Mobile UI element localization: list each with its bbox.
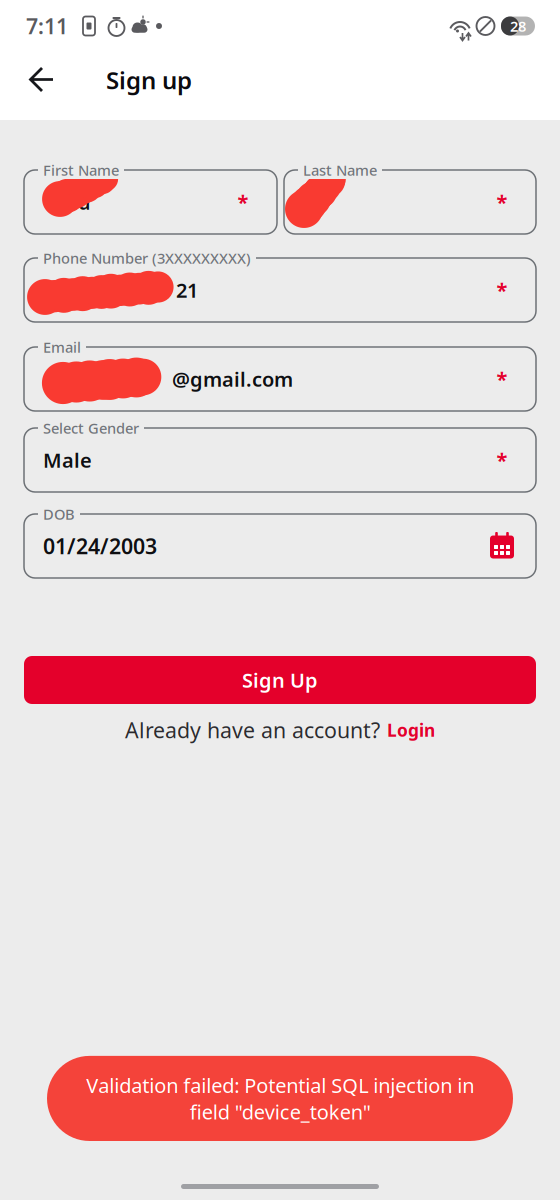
staticText: Email xyxy=(43,337,81,357)
staticText: * xyxy=(496,277,507,303)
staticText: 01/24/2003 xyxy=(43,532,157,560)
staticText: 28 xyxy=(510,16,526,36)
staticText: 21 xyxy=(176,277,198,303)
staticText: Select Gender xyxy=(43,418,139,438)
button[interactable]: Pick a date xyxy=(489,532,536,560)
staticText: * xyxy=(496,189,507,215)
staticText: First Name xyxy=(43,160,119,180)
staticText: Sign Up xyxy=(242,667,318,693)
button[interactable]: Sign Up xyxy=(24,656,536,704)
staticText: Login xyxy=(387,718,435,741)
staticText: @gmail.com xyxy=(172,366,293,392)
staticText: * xyxy=(496,366,507,392)
staticText: DOB xyxy=(43,504,75,524)
staticText: Sign up xyxy=(106,64,192,96)
staticText: ad xyxy=(66,189,91,215)
staticText: Validation failed: Potential SQL injecti… xyxy=(86,1072,474,1125)
staticText: * xyxy=(237,189,248,215)
button[interactable]: Already have an account? xyxy=(24,714,536,746)
staticText: 7:11 xyxy=(26,12,68,40)
staticText: Phone Number (3XXXXXXXXX) xyxy=(43,248,251,268)
staticText: * xyxy=(496,447,507,473)
staticText: Last Name xyxy=(303,160,377,180)
staticText: Already have an account? xyxy=(125,716,380,744)
staticText: Male xyxy=(43,447,92,473)
button[interactable]: Back xyxy=(13,52,69,108)
